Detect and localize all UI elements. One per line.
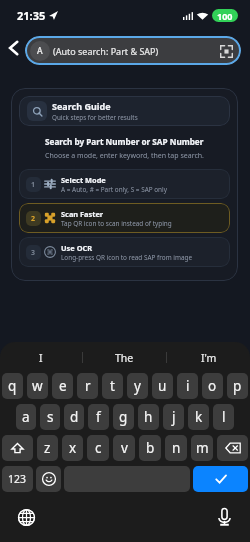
- staticText: l: [222, 408, 226, 426]
- staticText: u: [158, 377, 167, 395]
- button[interactable]: i: [177, 373, 198, 399]
- staticText: 3: [31, 248, 36, 258]
- button[interactable]: v: [113, 435, 135, 461]
- button[interactable]: o: [202, 373, 223, 399]
- staticText: I: [39, 351, 43, 365]
- staticText: p: [233, 377, 242, 395]
- button[interactable]: n: [165, 435, 187, 461]
- button[interactable]: I'm: [167, 342, 250, 373]
- button[interactable]: j: [163, 404, 184, 430]
- staticText: (Auto search: Part & SAP): [53, 45, 159, 57]
- staticText: Select Mode: [61, 175, 106, 185]
- staticText: n: [172, 439, 181, 457]
- staticText: The: [115, 351, 134, 365]
- staticText: Search by Part Number or SAP Number: [45, 136, 204, 147]
- button[interactable]: e: [52, 373, 73, 399]
- staticText: Long-press QR icon to read SAP from imag…: [61, 253, 193, 262]
- button[interactable]: The: [83, 342, 166, 373]
- staticText: A = Auto, # = Part only, S = SAP only: [61, 185, 167, 194]
- staticText: I'm: [201, 351, 217, 365]
- staticText: Choose a mode, enter keyword, then tap s…: [45, 151, 204, 161]
- button[interactable]: 123: [2, 466, 33, 492]
- staticText: a: [22, 408, 30, 426]
- staticText: k: [195, 408, 203, 426]
- staticText: q: [8, 377, 17, 395]
- button[interactable]: Shift: [2, 435, 33, 461]
- staticText: 100: [217, 10, 233, 22]
- button[interactable]: 1: [19, 169, 230, 199]
- button[interactable]: Backspace: [217, 435, 248, 461]
- staticText: z: [44, 439, 51, 457]
- button[interactable]: f: [88, 404, 109, 430]
- button[interactable]: q: [2, 373, 23, 399]
- staticText: c: [95, 439, 102, 457]
- staticText: d: [70, 408, 79, 426]
- button[interactable]: Enter: [193, 466, 248, 492]
- button[interactable]: b: [139, 435, 161, 461]
- staticText: 21:35: [17, 8, 46, 23]
- button[interactable]: Emoji: [36, 466, 61, 492]
- button[interactable]: h: [138, 404, 159, 430]
- button[interactable]: I: [0, 342, 82, 373]
- button[interactable]: 2: [19, 203, 230, 233]
- staticText: Scan Faster: [61, 209, 104, 219]
- staticText: Tap QR icon to scan instead of typing: [61, 219, 172, 228]
- staticText: 2: [31, 214, 36, 224]
- staticText: g: [119, 408, 128, 426]
- button[interactable]: m: [191, 435, 213, 461]
- button[interactable]: a: [16, 404, 36, 430]
- button[interactable]: c: [87, 435, 109, 461]
- staticText: t: [110, 377, 115, 395]
- staticText: f: [96, 408, 101, 426]
- staticText: s: [47, 408, 54, 426]
- staticText: e: [59, 377, 67, 395]
- staticText: r: [85, 377, 91, 395]
- button[interactable]: g: [113, 404, 134, 430]
- button[interactable]: u: [152, 373, 173, 399]
- button[interactable]: A: [25, 36, 241, 65]
- staticText: j: [172, 408, 176, 426]
- staticText: y: [134, 377, 141, 395]
- button[interactable]: x: [62, 435, 83, 461]
- button[interactable]: r: [77, 373, 98, 399]
- staticText: m: [196, 439, 209, 457]
- staticText: 123: [8, 472, 27, 486]
- staticText: 1: [31, 180, 36, 190]
- staticText: w: [32, 377, 43, 395]
- button[interactable]: Search Guide: [19, 96, 230, 126]
- button[interactable]: d: [64, 404, 84, 430]
- button[interactable]: l: [213, 404, 234, 430]
- staticText: i: [186, 377, 190, 395]
- button[interactable]: k: [188, 404, 209, 430]
- staticText: b: [146, 439, 155, 457]
- button[interactable]: 3: [19, 237, 230, 267]
- staticText: v: [121, 439, 128, 457]
- button[interactable]: s: [40, 404, 60, 430]
- staticText: A: [37, 45, 43, 57]
- button[interactable]: y: [127, 373, 148, 399]
- button[interactable]: p: [227, 373, 248, 399]
- button[interactable]: Voice input: [215, 508, 233, 526]
- staticText: Search Guide: [52, 100, 111, 112]
- button[interactable]: Change language: [17, 508, 35, 526]
- button[interactable]: z: [37, 435, 58, 461]
- button[interactable]: Scan QR code: [218, 43, 234, 59]
- button[interactable]: w: [27, 373, 48, 399]
- button[interactable]: t: [102, 373, 123, 399]
- staticText: Quick steps for better results: [52, 113, 138, 122]
- staticText: h: [144, 408, 153, 426]
- staticText: Use OCR: [61, 243, 93, 253]
- button[interactable]: Back: [2, 37, 24, 59]
- staticText: x: [69, 439, 77, 457]
- staticText: o: [208, 377, 217, 395]
